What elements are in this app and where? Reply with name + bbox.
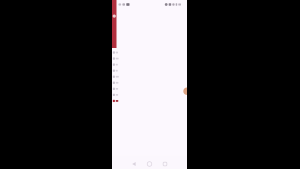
button[interactable]	[112, 56, 132, 62]
button[interactable]: Recent apps	[157, 159, 173, 168]
button[interactable]	[112, 68, 132, 74]
button[interactable]: Open side panel	[182, 87, 187, 95]
button[interactable]	[112, 86, 132, 92]
button[interactable]	[112, 62, 132, 68]
button[interactable]	[112, 49, 132, 55]
button[interactable]: Home	[142, 159, 157, 168]
button[interactable]	[112, 74, 132, 80]
button[interactable]	[112, 98, 132, 104]
button[interactable]	[112, 80, 132, 86]
button[interactable]	[112, 92, 132, 98]
button[interactable]: Back	[126, 159, 142, 168]
